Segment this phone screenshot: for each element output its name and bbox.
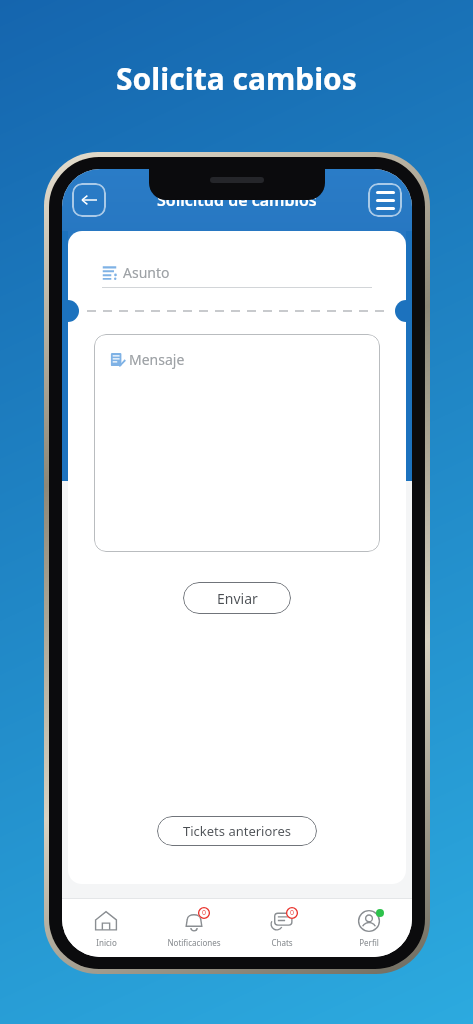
button[interactable]: Inicio (62, 899, 150, 957)
staticText: Enviar (217, 589, 258, 608)
button[interactable]: 0 (238, 899, 326, 957)
button[interactable]: Asunto (102, 263, 372, 288)
staticText: Chats (271, 937, 293, 948)
staticText: Mensaje (129, 350, 185, 369)
button[interactable]: Menu (368, 183, 402, 217)
staticText: 0 (202, 908, 207, 918)
staticText: Perfil (359, 937, 379, 948)
staticText: Inicio (96, 937, 117, 948)
staticText: 0 (290, 908, 295, 918)
staticText: Tickets anteriores (183, 822, 292, 840)
button[interactable]: Perfil (326, 899, 412, 957)
staticText: Solicita cambios (116, 58, 357, 99)
staticText: Notificaciones (167, 937, 221, 948)
staticText: Asunto (123, 263, 170, 282)
button[interactable]: 0 (150, 899, 238, 957)
button[interactable]: Back (72, 183, 106, 217)
staticText: Solicitud de cambios (157, 189, 317, 211)
button[interactable]: Mensaje (94, 334, 380, 552)
button[interactable]: Enviar (183, 582, 291, 614)
button[interactable]: Tickets anteriores (157, 816, 317, 846)
